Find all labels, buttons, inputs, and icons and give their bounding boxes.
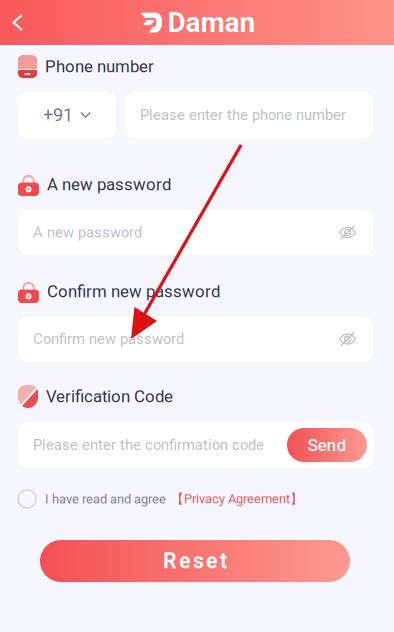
staticText: Daman xyxy=(167,6,255,39)
staticText: A new password xyxy=(33,224,142,241)
staticText: +91 xyxy=(43,104,73,126)
staticText: Phone number xyxy=(45,57,154,76)
button[interactable]: Reset xyxy=(40,540,350,582)
staticText: Please enter the phone number xyxy=(140,106,346,124)
button[interactable]: Send xyxy=(287,428,367,462)
staticText: Reset xyxy=(163,548,227,573)
staticText: Confirm new password xyxy=(33,330,184,348)
staticText: A new password xyxy=(47,175,171,194)
staticText: Verification Code xyxy=(46,387,173,406)
button[interactable]: I have read and agree xyxy=(18,486,373,512)
staticText: Confirm new password xyxy=(47,282,220,301)
staticText: Please enter the confirmation code xyxy=(33,436,264,454)
staticText: Send xyxy=(307,435,346,455)
button[interactable]: Show password xyxy=(334,326,360,352)
staticText: I have read and agree xyxy=(45,491,166,507)
button[interactable]: Show password xyxy=(334,219,360,245)
button[interactable]: Back xyxy=(0,0,36,45)
button[interactable]: +91 xyxy=(18,91,116,138)
staticText: 【Privacy Agreement】 xyxy=(171,491,303,507)
